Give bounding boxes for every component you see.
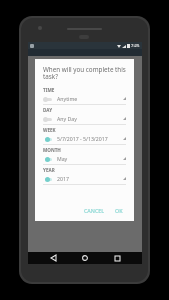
- staticText: Anytime: [57, 95, 78, 102]
- button[interactable]: Disabled: [43, 96, 53, 102]
- staticText: 7:25: [131, 43, 140, 49]
- button[interactable]: Home: [78, 252, 92, 264]
- button[interactable]: CANCEL: [81, 205, 108, 216]
- staticText: 2017: [57, 175, 69, 182]
- button[interactable]: Back: [46, 252, 60, 264]
- staticText: May: [57, 155, 68, 162]
- staticText: 5/7/2017 - 5/13/2017: [57, 135, 108, 142]
- staticText: CANCEL: [84, 207, 105, 214]
- button[interactable]: MONTH: [43, 147, 126, 167]
- button[interactable]: Enabled: [43, 136, 53, 142]
- staticText: WEEK: [43, 127, 56, 133]
- staticText: MONTH: [43, 147, 61, 153]
- button[interactable]: Disabled: [43, 116, 53, 122]
- button[interactable]: OK: [112, 205, 126, 216]
- staticText: When will you complete this task?: [43, 65, 126, 81]
- staticText: TIME: [43, 87, 55, 93]
- staticText: OK: [115, 207, 123, 214]
- button[interactable]: TIME: [43, 87, 126, 107]
- staticText: DAY: [43, 107, 53, 113]
- button[interactable]: Enabled: [43, 176, 53, 182]
- staticText: YEAR: [43, 167, 55, 173]
- staticText: Any Day: [57, 115, 77, 122]
- button[interactable]: YEAR: [43, 167, 126, 187]
- button[interactable]: Recent apps: [110, 252, 124, 264]
- button[interactable]: DAY: [43, 107, 126, 127]
- button[interactable]: WEEK: [43, 127, 126, 147]
- button[interactable]: Enabled: [43, 156, 53, 162]
